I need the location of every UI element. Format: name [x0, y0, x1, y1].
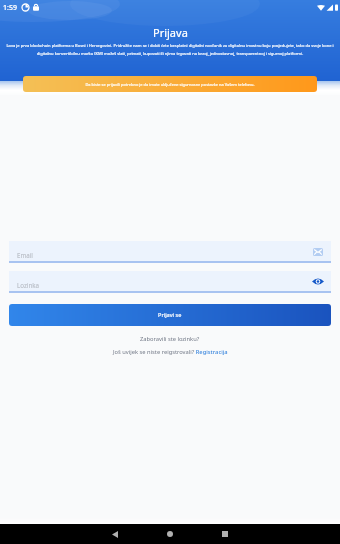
button[interactable]: Email — [9, 241, 331, 261]
button[interactable]: Još uvijek se niste reigstrovali? Regist… — [9, 346, 331, 357]
button[interactable]: Email — [311, 245, 324, 258]
button[interactable]: Back — [95, 524, 135, 544]
button[interactable]: Da biste se prijavili potrebno je da ima… — [23, 76, 317, 92]
button[interactable]: Home — [150, 524, 190, 544]
staticText: Prijava — [153, 25, 188, 40]
button[interactable]: Prijavi se — [9, 304, 331, 326]
staticText: Lozinka — [17, 281, 40, 289]
staticText: Zaboravili ste lozinku? — [140, 335, 200, 343]
staticText: Lova je prva blockchain platforma u Bosn… — [6, 43, 334, 56]
staticText: Još uvijek se niste reigstrovali? Regist… — [113, 348, 228, 356]
button[interactable]: Lozinka — [9, 271, 331, 291]
staticText: Da biste se prijavili potrebno je da ima… — [85, 82, 255, 87]
button[interactable]: Recent apps — [205, 524, 245, 544]
staticText: 1:59 — [3, 3, 17, 13]
staticText: Email — [17, 251, 33, 259]
button[interactable]: Show password — [311, 275, 324, 288]
button[interactable]: Zaboravili ste lozinku? — [9, 333, 331, 344]
staticText: Prijavi se — [158, 311, 182, 319]
